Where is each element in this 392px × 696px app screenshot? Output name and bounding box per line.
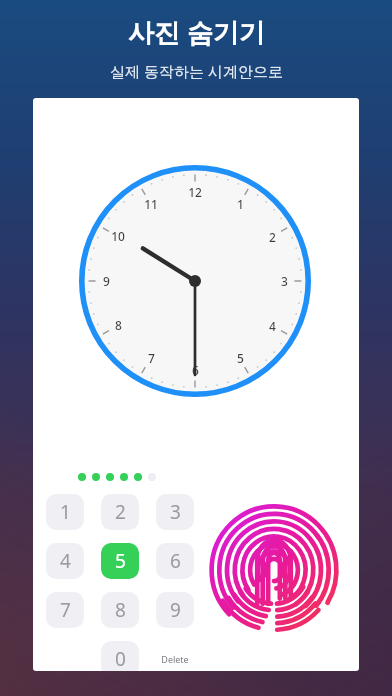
staticText: 5 [115, 548, 126, 574]
staticText: 4 [60, 548, 71, 574]
staticText: 사진 숨기기 [128, 14, 265, 50]
staticText: 3 [281, 273, 288, 289]
staticText: 4 [269, 318, 276, 334]
button[interactable]: 5 [101, 543, 139, 579]
button[interactable]: 7 [46, 592, 84, 628]
staticText: 7 [60, 597, 71, 623]
staticText: 1 [60, 499, 71, 525]
staticText: 1 [237, 196, 244, 212]
staticText: 실제 동작하는 시계안으로 [110, 61, 283, 81]
staticText: 8 [115, 597, 126, 623]
button[interactable]: 8 [101, 592, 139, 628]
staticText: 6 [192, 362, 199, 378]
staticText: 3 [170, 499, 181, 525]
button[interactable]: Fingerprint unlock [209, 505, 339, 635]
staticText: 7 [148, 350, 155, 366]
button[interactable]: 1 [46, 494, 84, 530]
staticText: 11 [144, 196, 158, 212]
staticText: 2 [269, 229, 276, 245]
staticText: 0 [115, 646, 126, 671]
button[interactable]: 9 [156, 592, 194, 628]
button[interactable]: 6 [156, 543, 194, 579]
staticText: 5 [237, 350, 244, 366]
button[interactable]: Delete [156, 641, 194, 671]
staticText: 10 [111, 228, 125, 244]
button[interactable]: 2 [101, 494, 139, 530]
staticText: Delete [161, 653, 189, 665]
button[interactable]: 4 [46, 543, 84, 579]
staticText: 6 [170, 548, 181, 574]
staticText: 9 [103, 273, 110, 289]
button[interactable]: 3 [156, 494, 194, 530]
staticText: 2 [115, 499, 126, 525]
button[interactable]: 0 [101, 641, 139, 671]
staticText: 12 [188, 184, 202, 200]
staticText: 9 [170, 597, 181, 623]
staticText: 8 [115, 317, 122, 333]
